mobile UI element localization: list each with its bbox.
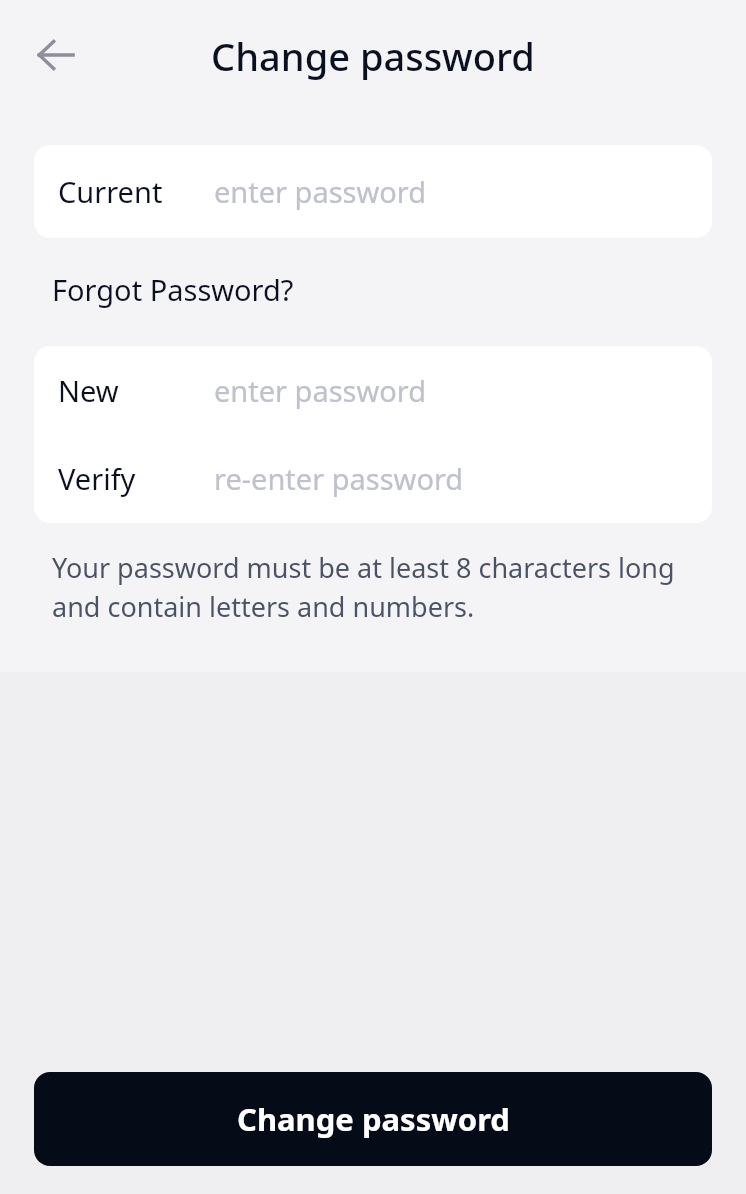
staticText: enter password [214,371,427,410]
staticText: Forgot Password? [52,270,294,309]
button[interactable]: New [34,346,712,434]
staticText: Current [58,172,214,211]
button[interactable]: Forgot Password? [34,264,312,315]
button[interactable]: Change password [34,1072,712,1166]
staticText: re-enter password [214,459,464,498]
staticText: Your password must be at least 8 charact… [52,549,694,625]
staticText: Change password [237,1098,510,1140]
button[interactable]: Verify [34,434,712,523]
button[interactable]: Back [18,17,94,93]
staticText: Change password [211,30,535,82]
staticText: Verify [58,459,214,498]
staticText: enter password [214,172,427,211]
button[interactable]: Current [34,145,712,238]
staticText: New [58,371,214,410]
